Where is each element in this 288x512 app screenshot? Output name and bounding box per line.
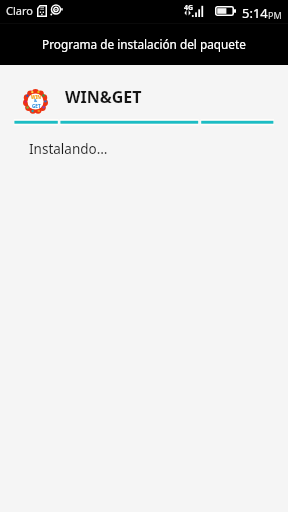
staticText: WIN (31, 94, 41, 100)
staticText: Claro (6, 3, 33, 18)
staticText: GET (32, 103, 41, 109)
button[interactable]: Programa de instalación del paquete (0, 22, 288, 65)
staticText: Instalando… (29, 140, 108, 158)
staticText: Programa de instalación del paquete (42, 36, 246, 52)
staticText: & (34, 98, 38, 104)
button[interactable]: WIN (0, 84, 288, 118)
staticText: PM (268, 9, 282, 21)
staticText: 5:14 (242, 4, 268, 22)
staticText: 4G (184, 3, 194, 13)
staticText: WIN&GET (65, 86, 142, 108)
